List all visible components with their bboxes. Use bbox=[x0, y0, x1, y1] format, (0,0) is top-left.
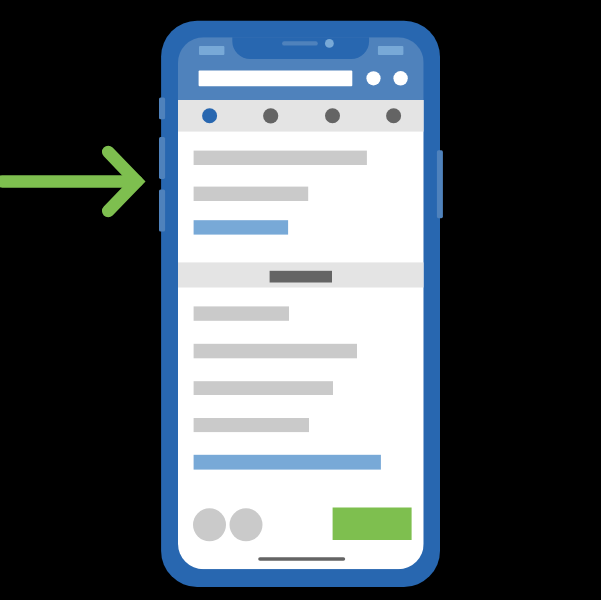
button[interactable]: Tab three bbox=[301, 100, 362, 132]
button[interactable]: Read more bbox=[178, 214, 424, 248]
button[interactable]: Continue bbox=[333, 508, 412, 541]
button[interactable]: Tab one, selected bbox=[178, 100, 239, 132]
button[interactable]: Detail line one bbox=[178, 296, 424, 333]
button[interactable]: Mute switch bbox=[159, 97, 165, 119]
button[interactable]: Detail line two bbox=[178, 333, 424, 370]
button[interactable]: Tab two bbox=[239, 100, 300, 132]
button[interactable]: Volume down bbox=[159, 190, 165, 232]
button[interactable]: Section header bbox=[178, 262, 424, 287]
button[interactable]: Highlighted action bbox=[178, 444, 424, 480]
button[interactable]: Search bbox=[199, 71, 353, 87]
button[interactable]: Account bbox=[393, 71, 407, 85]
button[interactable]: First contact bbox=[193, 508, 226, 541]
button[interactable]: Home bbox=[258, 552, 345, 564]
button[interactable]: Power bbox=[437, 150, 443, 218]
button[interactable]: Detail line three bbox=[178, 370, 424, 407]
button[interactable]: Tab four bbox=[362, 100, 424, 132]
button[interactable]: Article title bbox=[178, 140, 424, 178]
button[interactable]: Callout arrow pointing at the phone bbox=[0, 145, 146, 218]
button[interactable]: Volume up bbox=[159, 137, 165, 179]
button[interactable]: Detail line four bbox=[178, 407, 424, 444]
button[interactable]: Notifications bbox=[366, 71, 380, 85]
button[interactable]: Second contact bbox=[230, 508, 263, 541]
button[interactable]: Article summary bbox=[178, 178, 424, 214]
